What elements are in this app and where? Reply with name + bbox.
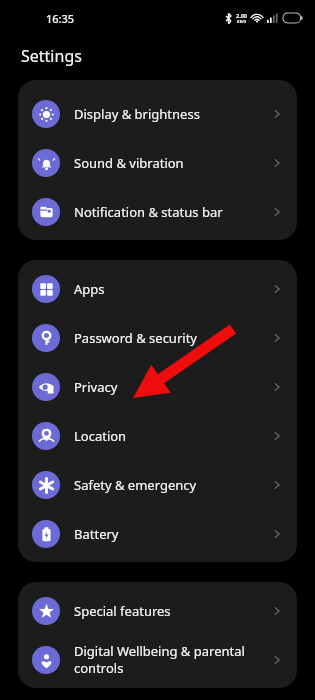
button[interactable]: Digital Wellbeing & parental controls xyxy=(18,635,297,684)
staticText: Display & brightness xyxy=(74,105,271,123)
button[interactable]: Special features xyxy=(18,586,297,635)
staticText: Safety & emergency xyxy=(74,476,271,494)
button[interactable]: Battery xyxy=(18,509,297,558)
staticText: Special features xyxy=(74,602,271,620)
staticText: 16:35 xyxy=(46,11,75,26)
button[interactable]: Password & security xyxy=(18,313,297,362)
staticText: Location xyxy=(74,427,271,445)
staticText: Privacy xyxy=(74,378,271,396)
staticText: Settings xyxy=(21,45,82,67)
staticText: Notification & status bar xyxy=(74,203,271,221)
button[interactable]: Location xyxy=(18,411,297,460)
staticText: Apps xyxy=(74,280,271,298)
button[interactable]: Sound & vibration xyxy=(18,138,297,187)
button[interactable]: Notification & status bar xyxy=(18,187,297,236)
staticText: Password & security xyxy=(74,329,271,347)
button[interactable]: Apps xyxy=(18,264,297,313)
button[interactable]: Display & brightness xyxy=(18,89,297,138)
staticText: KB/S xyxy=(237,19,247,24)
staticText: Sound & vibration xyxy=(74,154,271,172)
staticText: Digital Wellbeing & parental controls xyxy=(74,642,271,677)
staticText: 2.00 xyxy=(236,12,247,19)
button[interactable]: Privacy xyxy=(18,362,297,411)
button[interactable]: Safety & emergency xyxy=(18,460,297,509)
staticText: Battery xyxy=(74,525,271,543)
